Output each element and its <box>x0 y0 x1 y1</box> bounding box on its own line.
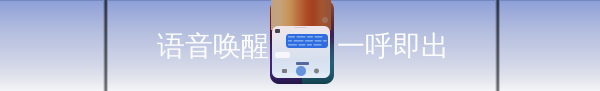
staticText: 一呼即出 <box>337 29 449 63</box>
staticText: 语音唤醒 <box>157 29 269 63</box>
